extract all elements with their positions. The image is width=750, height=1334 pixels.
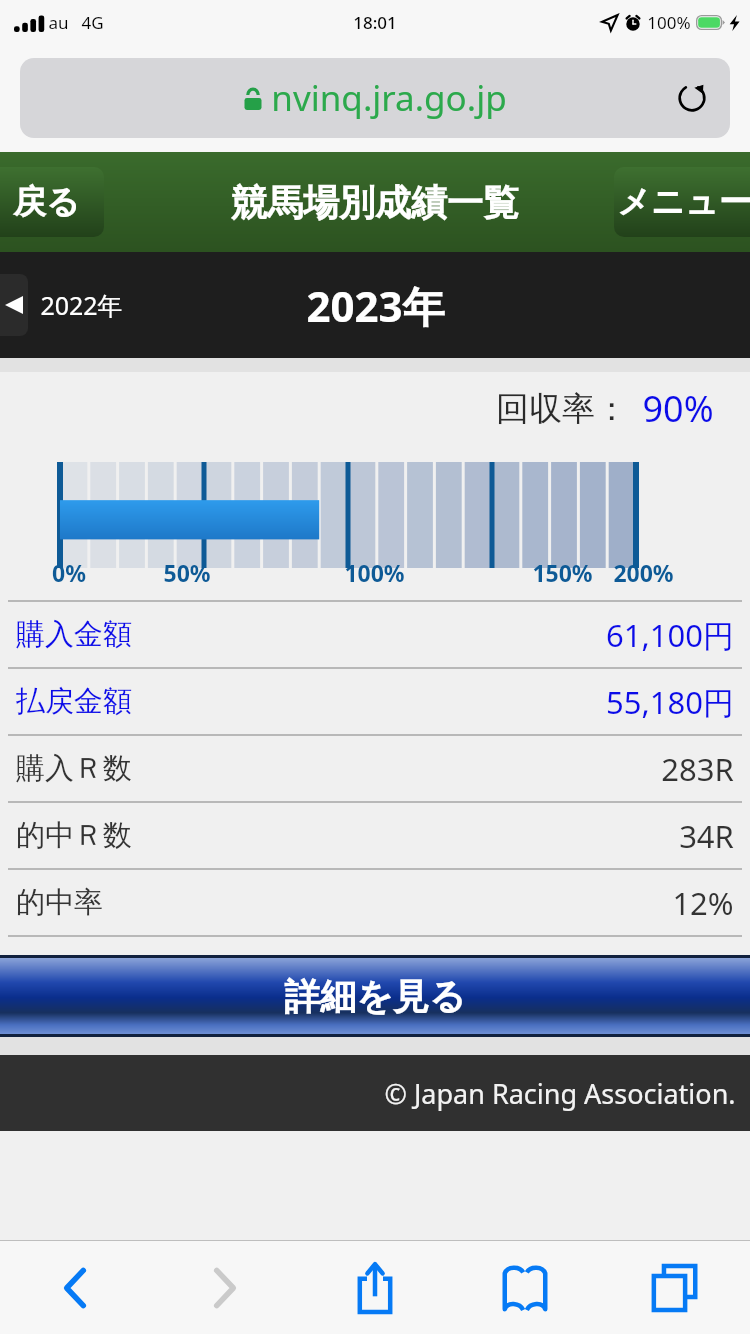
button[interactable]: Previous year: [0, 274, 28, 336]
staticText: 購入Ｒ数: [16, 750, 132, 787]
staticText: nvinq.jra.go.jp: [271, 74, 507, 122]
staticText: 100%: [344, 557, 405, 588]
button[interactable]: Share: [300, 1241, 450, 1334]
button[interactable]: Tabs: [600, 1241, 750, 1334]
button[interactable]: 戻る: [0, 167, 104, 237]
staticText: 競馬場別成績一覧: [231, 180, 519, 225]
staticText: 18:01: [353, 11, 397, 34]
staticText: 150%: [532, 557, 593, 588]
staticText: 戻る: [13, 181, 80, 223]
button[interactable]: 購入金額: [16, 602, 734, 667]
button[interactable]: Back: [0, 1241, 150, 1334]
staticText: 61,100円: [606, 614, 734, 656]
button[interactable]: メニュー: [614, 167, 750, 237]
button[interactable]: 詳細を見る: [0, 958, 750, 1034]
staticText: 34R: [679, 815, 734, 857]
button[interactable]: 払戻金額: [16, 669, 734, 734]
staticText: 2023年: [306, 277, 445, 334]
button[interactable]: 購入Ｒ数: [16, 736, 734, 801]
staticText: 的中Ｒ数: [16, 817, 132, 854]
staticText: 55,180円: [606, 681, 734, 723]
button[interactable]: 的中Ｒ数: [16, 803, 734, 868]
staticText: 12%: [672, 882, 734, 924]
staticText: 詳細を見る: [284, 974, 466, 1019]
staticText: 4G: [81, 11, 104, 34]
staticText: 283R: [661, 748, 734, 790]
staticText: メニュー: [617, 181, 750, 223]
staticText: 回収率：: [496, 388, 628, 430]
staticText: 2022年: [40, 288, 123, 322]
button[interactable]: Forward: [150, 1241, 300, 1334]
button[interactable]: 的中率: [16, 870, 734, 935]
staticText: 100%: [647, 11, 691, 34]
button[interactable]: Bookmarks: [450, 1241, 600, 1334]
button[interactable]: Reload: [670, 76, 714, 120]
staticText: au: [48, 11, 69, 34]
staticText: 購入金額: [16, 616, 132, 653]
button[interactable]: nvinq.jra.go.jp: [20, 58, 730, 138]
staticText: 0%: [52, 557, 86, 588]
staticText: 払戻金額: [16, 683, 132, 720]
staticText: 的中率: [16, 884, 103, 921]
staticText: 50%: [163, 557, 211, 588]
staticText: 90%: [642, 384, 714, 433]
staticText: 200%: [613, 557, 674, 588]
staticText: © Japan Racing Association.: [384, 1075, 736, 1112]
